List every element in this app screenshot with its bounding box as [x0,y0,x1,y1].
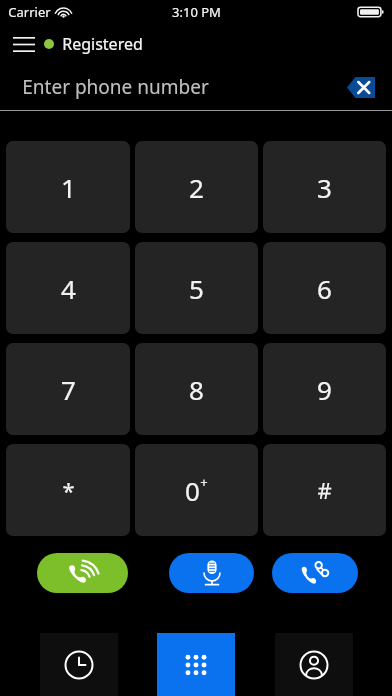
button[interactable]: Menu [6,26,42,62]
staticText: 2 [189,170,204,205]
button[interactable]: # [263,444,386,536]
button[interactable]: 4 [6,242,130,334]
staticText: Registered [62,33,143,55]
button[interactable]: 2 [135,141,258,233]
staticText: 6 [317,271,332,306]
staticText: 0 [185,473,200,508]
button[interactable]: 6 [263,242,386,334]
button[interactable]: 8 [135,343,258,435]
button[interactable]: 5 [135,242,258,334]
button[interactable]: Contacts [275,633,353,696]
button[interactable]: 3 [263,141,386,233]
staticText: 3:10 PM [172,3,221,21]
button[interactable]: * [6,444,130,536]
button[interactable]: Transfer call [272,553,358,593]
staticText: Carrier [8,3,51,21]
staticText: 9 [317,372,332,407]
button[interactable]: Backspace [344,74,378,100]
staticText: 5 [189,271,204,306]
button[interactable]: Call [37,553,128,593]
button[interactable]: Recents [40,633,118,696]
button[interactable]: 7 [6,343,130,435]
staticText: 4 [61,271,76,306]
button[interactable]: 1 [6,141,130,233]
staticText: 7 [61,372,76,407]
staticText: 1 [61,170,76,205]
staticText: * [62,475,75,505]
staticText: + [200,473,208,491]
staticText: Enter phone number [22,74,209,100]
staticText: # [317,475,332,505]
button[interactable]: 9 [263,343,386,435]
button[interactable]: 0 [135,444,258,536]
button[interactable]: Keypad [157,633,235,696]
staticText: 8 [189,372,204,407]
staticText: 3 [317,170,332,205]
button[interactable]: Voice search [169,553,254,593]
